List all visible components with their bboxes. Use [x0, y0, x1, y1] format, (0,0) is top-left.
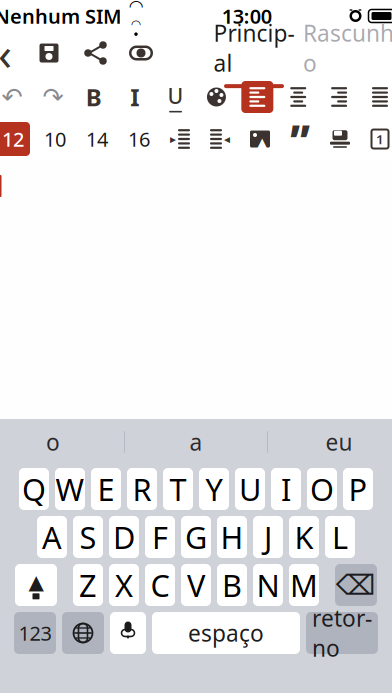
staticText: L: [332, 517, 348, 557]
button[interactable]: Preview: [118, 30, 164, 76]
button[interactable]: 16: [122, 122, 156, 156]
button[interactable]: eu: [268, 419, 392, 465]
staticText: ↶: [1, 83, 22, 111]
button[interactable]: F: [145, 516, 175, 558]
button[interactable]: U: [235, 468, 265, 510]
button[interactable]: B: [217, 564, 247, 606]
staticText: 10: [44, 126, 66, 152]
staticText: M: [290, 565, 318, 605]
button[interactable]: I: [271, 468, 301, 510]
button[interactable]: Next keyboard: [62, 612, 104, 654]
button[interactable]: Quote: [284, 123, 316, 155]
button[interactable]: Redo: [37, 81, 69, 113]
staticText: ◠: [131, 17, 140, 31]
button[interactable]: Y: [199, 468, 229, 510]
staticText: E: [97, 469, 114, 509]
button[interactable]: Align center: [282, 81, 314, 113]
staticText: 16: [128, 126, 150, 152]
staticText: 1: [376, 130, 384, 148]
button[interactable]: Principal: [208, 30, 300, 76]
button[interactable]: W: [55, 468, 85, 510]
button[interactable]: Justify: [364, 81, 392, 113]
button[interactable]: Align left: [241, 81, 273, 113]
button[interactable]: Z: [73, 564, 103, 606]
button[interactable]: Back: [0, 30, 26, 76]
button[interactable]: Underline: [160, 81, 192, 113]
button[interactable]: V: [181, 564, 211, 606]
button[interactable]: a: [125, 419, 267, 465]
button[interactable]: o: [0, 419, 124, 465]
button[interactable]: Text color: [200, 81, 232, 113]
button[interactable]: M: [289, 564, 319, 606]
staticText: o: [46, 427, 60, 457]
button[interactable]: Share: [72, 30, 118, 76]
button[interactable]: Align right: [323, 81, 355, 113]
staticText: Rascunho: [303, 18, 392, 78]
staticText: ⌫: [336, 569, 376, 601]
staticText: 12: [2, 126, 24, 152]
staticText: C: [150, 565, 169, 605]
staticText: ▲: [28, 571, 43, 593]
staticText: retorno: [312, 603, 372, 663]
button[interactable]: Italic: [119, 81, 151, 113]
button[interactable]: S: [73, 516, 103, 558]
staticText: A: [42, 517, 62, 557]
button[interactable]: L: [325, 516, 355, 558]
staticText: H: [220, 517, 243, 557]
button[interactable]: O: [307, 468, 337, 510]
staticText: B: [222, 565, 242, 605]
button[interactable]: A: [37, 516, 67, 558]
button[interactable]: Bold: [78, 81, 110, 113]
button[interactable]: Q: [19, 468, 49, 510]
button[interactable]: Shift: [15, 564, 57, 606]
button[interactable]: R: [127, 468, 157, 510]
button[interactable]: Decrease indent: [204, 123, 236, 155]
button[interactable]: Undo: [0, 81, 28, 113]
button[interactable]: X: [109, 564, 139, 606]
button[interactable]: retorno: [306, 612, 378, 654]
button[interactable]: C: [145, 564, 175, 606]
button[interactable]: Insert image: [244, 123, 276, 155]
button[interactable]: K: [289, 516, 319, 558]
button[interactable]: 12: [0, 122, 30, 156]
button[interactable]: Save: [26, 30, 72, 76]
button[interactable]: J: [253, 516, 283, 558]
button[interactable]: D: [109, 516, 139, 558]
staticText: I: [130, 81, 139, 113]
button[interactable]: 10: [38, 122, 72, 156]
staticText: Nenhum SIM: [0, 3, 122, 29]
staticText: N: [256, 565, 279, 605]
staticText: D: [113, 517, 135, 557]
staticText: espaço: [188, 618, 264, 648]
button[interactable]: Export: [324, 123, 356, 155]
button[interactable]: Page number: [364, 123, 392, 155]
button[interactable]: N: [253, 564, 283, 606]
button[interactable]: E: [91, 468, 121, 510]
button[interactable]: Dictation: [110, 612, 146, 654]
button[interactable]: 14: [80, 122, 114, 156]
staticText: V: [187, 565, 205, 605]
staticText: ▸: [170, 132, 176, 146]
staticText: B: [86, 81, 102, 113]
staticText: 14: [86, 126, 108, 152]
button[interactable]: Delete: [335, 564, 377, 606]
button[interactable]: P: [343, 468, 373, 510]
staticText: Z: [79, 565, 97, 605]
button[interactable]: Rascunho: [300, 30, 392, 76]
staticText: T: [169, 469, 186, 509]
button[interactable]: H: [217, 516, 247, 558]
staticText: a: [189, 427, 202, 457]
button[interactable]: T: [163, 468, 193, 510]
button[interactable]: espaço: [152, 612, 300, 654]
staticText: P: [348, 469, 367, 509]
button[interactable]: G: [181, 516, 211, 558]
staticText: J: [264, 517, 272, 557]
button[interactable]: Numbers: [14, 612, 56, 654]
staticText: ◂: [224, 132, 230, 146]
button[interactable]: Increase indent: [164, 123, 196, 155]
staticText: F: [152, 517, 168, 557]
staticText: Principal: [213, 18, 294, 78]
staticText: ↷: [42, 83, 63, 111]
staticText: Q: [22, 469, 46, 509]
staticText: I: [281, 469, 291, 509]
